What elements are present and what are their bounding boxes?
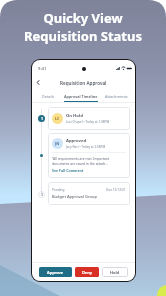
button[interactable]: Back bbox=[32, 77, 44, 88]
button[interactable]: See Full Comment bbox=[52, 168, 84, 173]
button[interactable]: JN bbox=[48, 133, 130, 178]
button[interactable]: Approve bbox=[39, 267, 72, 277]
staticText: Approve bbox=[47, 270, 64, 275]
staticText: Requisition Approval bbox=[60, 80, 107, 86]
staticText: Deny bbox=[82, 270, 92, 275]
staticText: JN bbox=[55, 141, 60, 146]
staticText: 3 bbox=[41, 192, 43, 197]
staticText: Details bbox=[42, 94, 55, 99]
button[interactable]: Pending bbox=[48, 182, 130, 205]
staticText: LC bbox=[55, 116, 60, 121]
staticText: Hold bbox=[110, 270, 120, 275]
staticText: Pending bbox=[52, 188, 65, 192]
staticText: 1 bbox=[41, 116, 43, 121]
button[interactable]: Details bbox=[32, 94, 64, 102]
button[interactable]: Deny bbox=[75, 267, 99, 277]
button[interactable]: LC bbox=[48, 107, 130, 130]
button[interactable]: Approval Timeline bbox=[64, 94, 98, 102]
staticText: Approval Timeline bbox=[64, 94, 98, 99]
button[interactable]: Attachments bbox=[98, 94, 135, 102]
staticText: On Hold bbox=[66, 113, 83, 119]
staticText: Approved bbox=[66, 138, 87, 144]
staticText: Requisition Status bbox=[24, 27, 142, 45]
staticText: Quicky View bbox=[43, 9, 123, 27]
staticText: Budget Approval Group bbox=[52, 194, 97, 199]
staticText: Jacy Neri • Today at 2:58PM bbox=[66, 145, 106, 149]
staticText: Due 12/12/21 bbox=[106, 188, 126, 192]
staticText: Attachments bbox=[105, 94, 128, 99]
staticText: "All requirements are met. Important doc… bbox=[52, 156, 126, 166]
staticText: Luiz Chapel • Today at 1:08PM bbox=[66, 120, 110, 124]
staticText: 9:41 bbox=[38, 66, 47, 72]
button[interactable]: Hold bbox=[102, 267, 128, 277]
